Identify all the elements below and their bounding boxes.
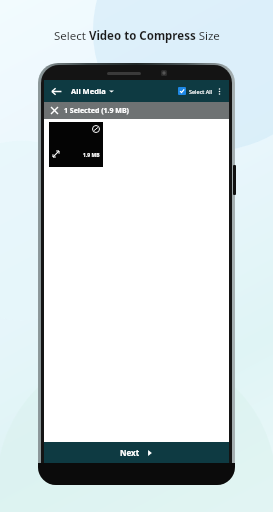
staticText: Select All [189,88,213,95]
button[interactable]: Next [44,442,229,463]
button[interactable]: More options [213,85,226,98]
button[interactable]: Select All [178,87,213,95]
button[interactable]: Clear selection [49,105,60,116]
staticText: Next [120,447,140,458]
staticText: 1.9 MB [83,152,100,159]
staticText: All Media [71,86,106,96]
button[interactable]: Back [48,83,64,99]
staticText: Select Video to Compress Size [54,28,220,44]
button[interactable]: All Media [71,86,114,96]
button[interactable]: 1.9 MB [49,122,103,167]
staticText: 1 Selected (1.9 MB) [64,106,129,116]
